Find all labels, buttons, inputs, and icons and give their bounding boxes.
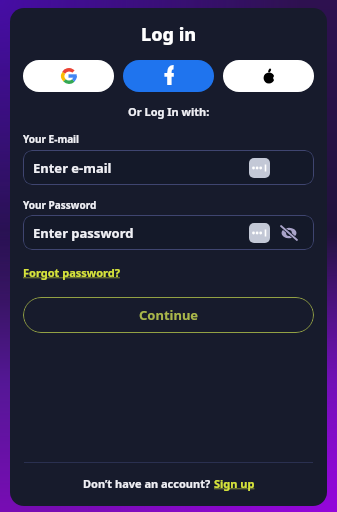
staticText: Enter password <box>33 224 134 242</box>
staticText: Don’t have an account? <box>83 476 214 491</box>
button[interactable]: Enter e-mail <box>23 150 314 185</box>
button[interactable]: Enter password <box>23 215 314 250</box>
staticText: Enter e-mail <box>33 159 112 177</box>
staticText: Your E-mail <box>23 132 80 146</box>
button[interactable] <box>223 60 314 92</box>
staticText: Or Log In with: <box>128 104 210 119</box>
staticText: Continue <box>139 306 199 324</box>
button[interactable] <box>23 60 114 92</box>
button[interactable]: Sign up <box>214 476 255 491</box>
button[interactable]: Continue <box>23 297 314 333</box>
button[interactable] <box>123 60 214 92</box>
button[interactable]: Forgot password? <box>23 265 120 280</box>
staticText: Your Password <box>23 198 97 212</box>
staticText: Log in <box>141 22 197 47</box>
